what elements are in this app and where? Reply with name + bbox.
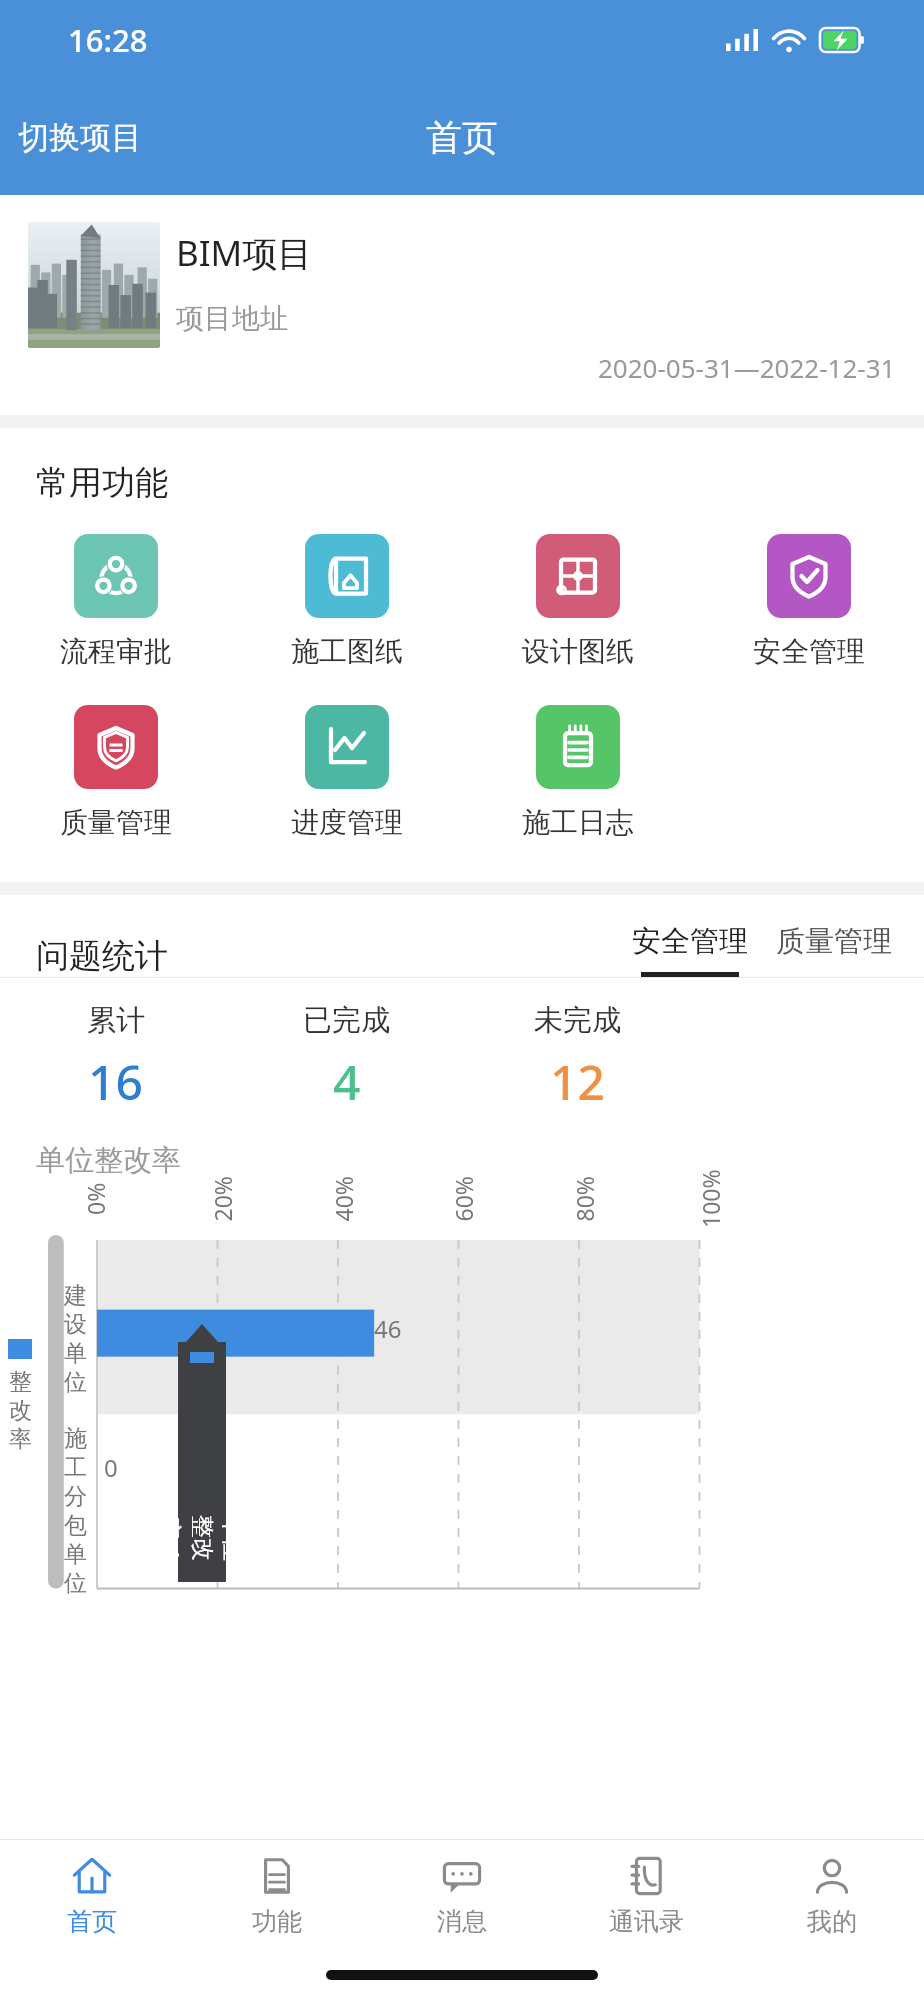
staticText: 率 [9,1425,32,1454]
staticText: 首页 [426,115,498,160]
button[interactable]: 已完成 [231,1002,462,1114]
staticText: 位 [64,1368,87,1397]
button[interactable]: 质量管理 [54,701,178,844]
staticText: 项目地址 [176,301,288,336]
staticText: 单 [64,1540,87,1569]
button[interactable]: 未完成 [462,1002,693,1114]
button[interactable]: 流程审批 [54,530,178,673]
staticText: 0 [104,1451,118,1484]
staticText: 16:28 [68,19,148,61]
button[interactable]: 安全管理 [747,530,871,673]
button[interactable]: 功能 [184,1840,369,1950]
staticText: 进度管理 [291,805,403,840]
staticText: 安全管理 [632,923,748,960]
button[interactable]: BIM项目 [0,195,924,415]
staticText: 设 [64,1310,87,1339]
staticText: 单位整改率 [36,1142,181,1179]
staticText: 流程审批 [60,634,172,669]
staticText: 包 [64,1511,87,1540]
staticText: 2020-05-31—2022-12-31 [598,350,896,385]
staticText: 工 [64,1453,87,1482]
staticText: 施工日志 [522,805,634,840]
staticText: 通讯录 [609,1906,684,1937]
button[interactable]: 切换项目 [0,106,160,169]
staticText: 常用功能 [36,462,168,504]
staticText: 80% [568,1175,599,1221]
staticText: 消息 [437,1906,487,1937]
staticText: 40% [327,1175,358,1221]
staticText: 质量管理 [776,923,892,960]
staticText: 问题统计 [36,935,168,977]
staticText: 0% [80,1182,111,1215]
staticText: 4 [333,1049,361,1114]
staticText: 累计 [87,1002,145,1039]
staticText: 位 [64,1569,87,1598]
button[interactable]: 施工图纸 [285,530,409,673]
staticText: 100% [695,1169,726,1228]
staticText: 施 [64,1424,87,1453]
staticText: 20% [206,1175,237,1221]
button[interactable]: 我的 [739,1840,924,1950]
staticText: 质量管理 [60,805,172,840]
button[interactable]: 消息 [369,1840,554,1950]
button[interactable]: 累计 [0,1002,231,1114]
staticText: BIM项目 [176,229,313,277]
staticText: 功能 [252,1906,302,1937]
staticText: 60% [447,1175,478,1221]
staticText: 46 [374,1312,402,1345]
staticText: 未完成 [534,1002,621,1039]
staticText: 单 [64,1339,87,1368]
button[interactable]: 施工日志 [516,701,640,844]
staticText: 16 [88,1049,143,1114]
staticText: 改 [9,1396,32,1425]
staticText: 设计图纸 [522,634,634,669]
staticText: 已完成 [303,1002,390,1039]
button[interactable]: 首页 [0,1840,184,1950]
staticText: 建设单位 整改率:46% [124,1514,280,1562]
staticText: 安全管理 [753,634,865,669]
button[interactable]: 通讯录 [554,1840,739,1950]
button[interactable]: 质量管理 [772,923,896,977]
staticText: 施工图纸 [291,634,403,669]
staticText: 切换项目 [18,118,142,157]
staticText: 12 [550,1049,605,1114]
staticText: 整 [9,1367,32,1396]
staticText: 分 [64,1482,87,1511]
staticText: 建 [64,1281,87,1310]
button[interactable]: 设计图纸 [516,530,640,673]
staticText: 首页 [67,1906,117,1937]
button[interactable]: 安全管理 [628,923,752,977]
button[interactable]: 进度管理 [285,701,409,844]
staticText: 我的 [807,1906,857,1937]
